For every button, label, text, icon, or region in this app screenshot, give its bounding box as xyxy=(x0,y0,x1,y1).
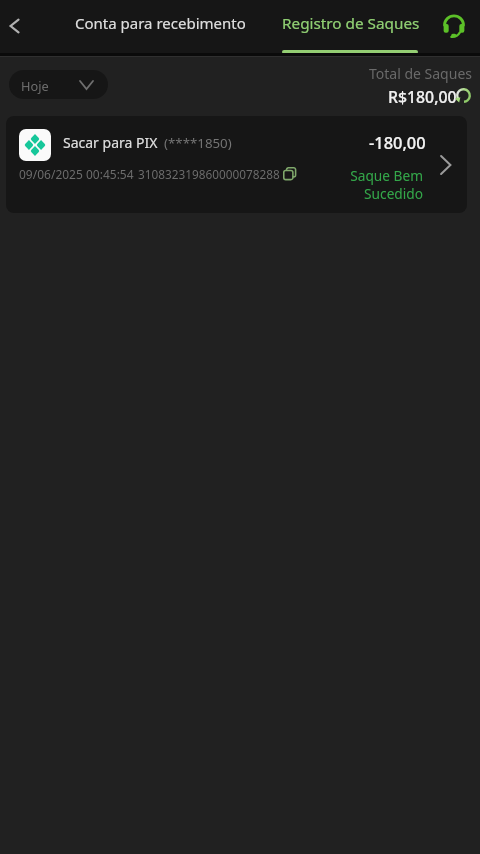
staticText: Total de Saques xyxy=(369,64,472,83)
button[interactable]: Sacar para PIX xyxy=(6,116,467,213)
staticText: Hoje xyxy=(21,77,49,94)
button[interactable]: Conta para recebimento xyxy=(60,0,260,49)
staticText: Conta para recebimento xyxy=(75,13,246,33)
button[interactable]: Registro de Saques xyxy=(271,0,431,49)
staticText: R$180,00 xyxy=(388,86,457,108)
staticText: 09/06/2025 00:45:54 xyxy=(19,166,134,182)
button[interactable]: Copy xyxy=(283,167,296,182)
button[interactable]: Back xyxy=(0,5,36,47)
staticText: Saque Bem Sucedido xyxy=(336,166,423,203)
staticText: Sacar para PIX xyxy=(63,133,158,152)
staticText: (****1850) xyxy=(164,134,232,152)
button[interactable]: Support xyxy=(435,7,473,45)
button[interactable]: Refresh xyxy=(455,87,472,104)
button[interactable]: Hoje xyxy=(9,70,108,99)
staticText: Registro de Saques xyxy=(282,13,420,34)
staticText: 310832319860000078288 xyxy=(138,166,280,182)
staticText: -180,00 xyxy=(369,131,426,153)
